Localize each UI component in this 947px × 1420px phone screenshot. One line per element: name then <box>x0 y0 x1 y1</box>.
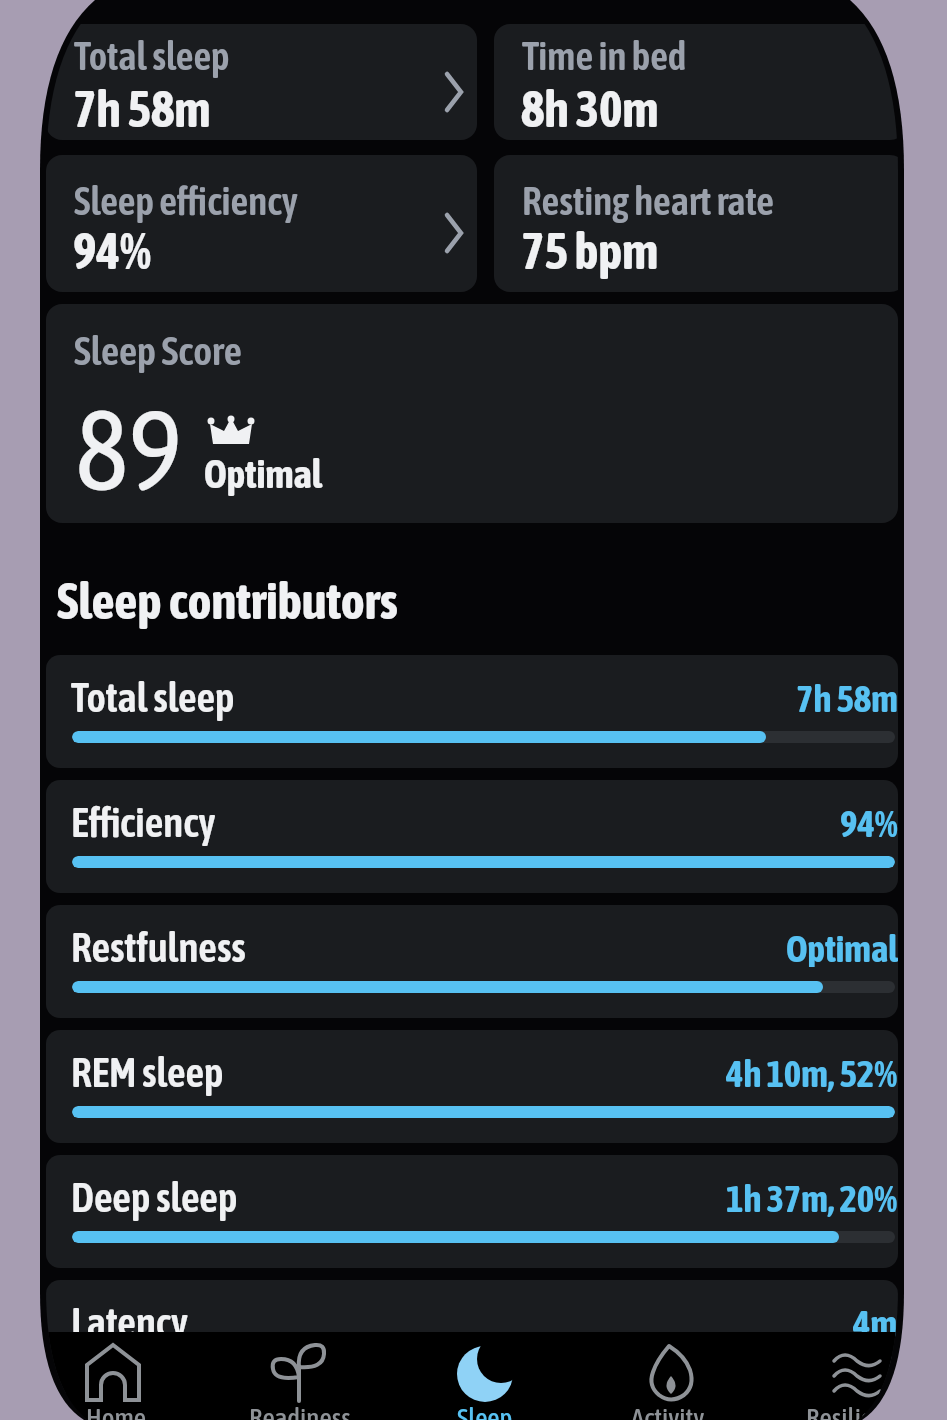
staticText: Home <box>86 1402 147 1420</box>
button[interactable]: Sleep Score <box>46 304 898 523</box>
staticText: Efficiency <box>71 799 216 846</box>
staticText: 89 <box>75 384 183 515</box>
staticText: Sleep contributors <box>57 571 398 629</box>
staticText: Optimal <box>204 452 323 497</box>
staticText: 8h 30m <box>521 80 659 137</box>
staticText: Resilience <box>806 1402 909 1420</box>
staticText: 4h 10m, 52% <box>726 1052 898 1092</box>
button[interactable]: Total sleep <box>46 655 898 768</box>
staticText: 7h 58m <box>796 677 898 717</box>
staticText: Latency <box>71 1299 188 1346</box>
staticText: Resting heart rate <box>522 179 775 224</box>
button[interactable]: Sleep efficiency <box>46 155 477 292</box>
staticText: REM sleep <box>71 1049 224 1096</box>
staticText: Optimal <box>786 927 898 967</box>
staticText: 94% <box>73 222 151 279</box>
staticText: Readiness <box>249 1402 351 1420</box>
button[interactable]: Total sleep <box>46 24 477 140</box>
button[interactable]: Deep sleep <box>46 1155 898 1268</box>
button[interactable]: Efficiency <box>46 780 898 893</box>
button[interactable] <box>33 1336 193 1420</box>
button[interactable]: Resting heart rate <box>494 155 906 292</box>
staticText: 1h 37m, 20% <box>726 1177 898 1217</box>
staticText: Activity <box>631 1402 705 1420</box>
staticText: Total sleep <box>74 34 230 79</box>
button[interactable] <box>405 1336 565 1420</box>
staticText: Sleep Score <box>74 328 242 374</box>
button[interactable]: Restfulness <box>46 905 898 1018</box>
staticText: 75 bpm <box>521 222 659 279</box>
button[interactable] <box>591 1336 751 1420</box>
button[interactable] <box>777 1336 937 1420</box>
staticText: Deep sleep <box>71 1174 238 1221</box>
staticText: Time in bed <box>522 34 687 79</box>
staticText: Sleep efficiency <box>74 179 298 224</box>
staticText: Restfulness <box>71 924 246 971</box>
button[interactable]: Latency <box>46 1280 898 1393</box>
button[interactable]: REM sleep <box>46 1030 898 1143</box>
button[interactable]: Time in bed <box>494 24 906 140</box>
button[interactable] <box>219 1336 379 1420</box>
staticText: 94% <box>840 802 898 842</box>
staticText: 4m <box>853 1302 898 1342</box>
staticText: Sleep <box>457 1402 513 1420</box>
staticText: Total sleep <box>71 674 235 721</box>
staticText: 7h 58m <box>73 80 211 137</box>
